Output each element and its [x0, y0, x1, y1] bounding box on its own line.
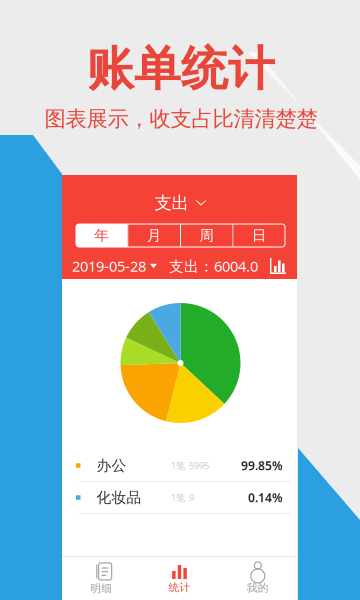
staticText: 周 [199, 226, 214, 244]
button[interactable]: 我的 [219, 556, 297, 600]
staticText: 统计 [168, 581, 190, 594]
staticText: 办公 [96, 456, 126, 474]
button[interactable]: Bar chart view [270, 258, 286, 274]
staticText: 99.85% [241, 457, 283, 473]
button[interactable]: 月 [128, 224, 180, 247]
button[interactable]: 2019-05-28 [72, 256, 157, 276]
button[interactable]: 办公 [62, 450, 297, 481]
staticText: 1笔 9 [171, 491, 194, 504]
staticText: 图表展示，收支占比清清楚楚 [44, 106, 317, 132]
staticText: 化妆品 [96, 488, 141, 506]
button[interactable]: 周 [181, 224, 232, 247]
button[interactable]: 日 [233, 224, 285, 247]
staticText: 支出：6004.0 [169, 256, 258, 276]
staticText: 日 [252, 226, 267, 244]
button[interactable]: 明细 [62, 556, 140, 600]
staticText: 我的 [247, 581, 269, 594]
staticText: 明细 [90, 582, 112, 595]
button[interactable]: 统计 [140, 556, 219, 600]
staticText: 0.14% [248, 489, 283, 505]
button[interactable]: 支出 [144, 190, 216, 216]
staticText: 账单统计 [87, 40, 275, 98]
button[interactable]: 化妆品 [62, 482, 297, 513]
staticText: 支出 [154, 192, 188, 214]
staticText: 1笔 5995 [171, 459, 209, 472]
staticText: 2019-05-28 [72, 256, 146, 276]
staticText: 年 [94, 226, 109, 244]
button[interactable]: 年 [76, 224, 127, 247]
staticText: 月 [147, 226, 162, 244]
